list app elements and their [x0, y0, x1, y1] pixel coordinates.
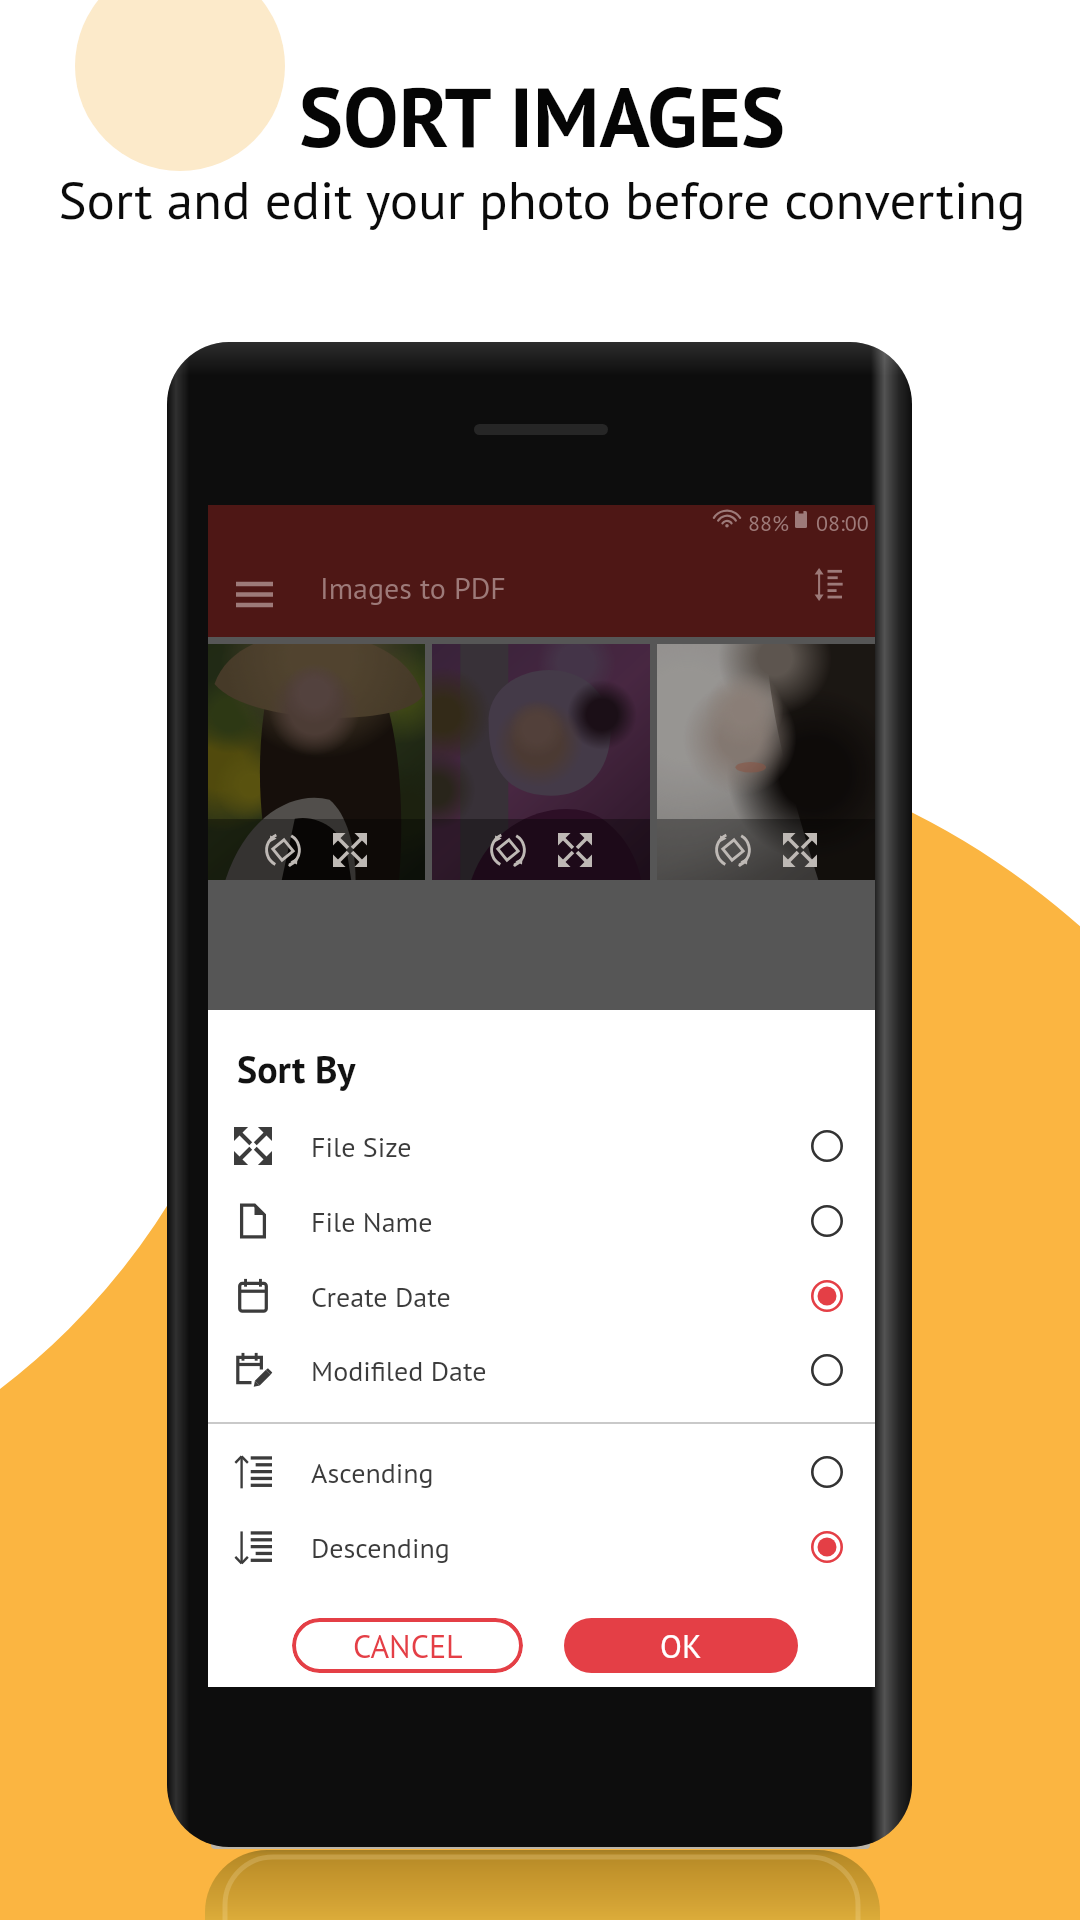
staticText: 08:00: [816, 509, 869, 537]
staticText: Sort and edit your photo before converti…: [2, 165, 1080, 234]
staticText: File Size: [311, 1128, 412, 1164]
button[interactable]: Rotate image: [208, 644, 425, 880]
staticText: Images to PDF: [320, 568, 506, 607]
button[interactable]: View image full screen: [325, 825, 375, 875]
button[interactable]: View image full screen: [550, 825, 600, 875]
button[interactable]: Open navigation menu: [224, 564, 284, 624]
button[interactable]: Rotate image: [657, 644, 875, 880]
button[interactable]: Rotate image: [483, 825, 533, 875]
button[interactable]: OK: [564, 1618, 798, 1673]
button[interactable]: Rotate image: [708, 825, 758, 875]
button[interactable]: Sort options: [797, 552, 861, 616]
button[interactable]: Ascending: [208, 1434, 875, 1509]
button[interactable]: View image full screen: [775, 825, 825, 875]
button[interactable]: Modifiled Date: [208, 1332, 875, 1407]
staticText: Sort By: [237, 1044, 356, 1093]
button[interactable]: File Name: [208, 1183, 875, 1258]
staticText: Create Date: [311, 1278, 451, 1314]
button[interactable]: CANCEL: [292, 1618, 523, 1673]
staticText: CANCEL: [353, 1625, 463, 1666]
button[interactable]: Create Date: [208, 1258, 875, 1333]
staticText: 88%: [748, 509, 789, 537]
button[interactable]: Rotate image: [432, 644, 650, 880]
staticText: OK: [660, 1625, 702, 1666]
staticText: File Name: [311, 1203, 433, 1239]
button[interactable]: File Size: [208, 1108, 875, 1183]
staticText: SORT IMAGES: [2, 63, 1080, 170]
staticText: Descending: [311, 1529, 450, 1565]
button[interactable]: Rotate image: [258, 825, 308, 875]
staticText: Ascending: [311, 1454, 434, 1490]
staticText: Modifiled Date: [311, 1352, 487, 1388]
button[interactable]: Descending: [208, 1509, 875, 1584]
